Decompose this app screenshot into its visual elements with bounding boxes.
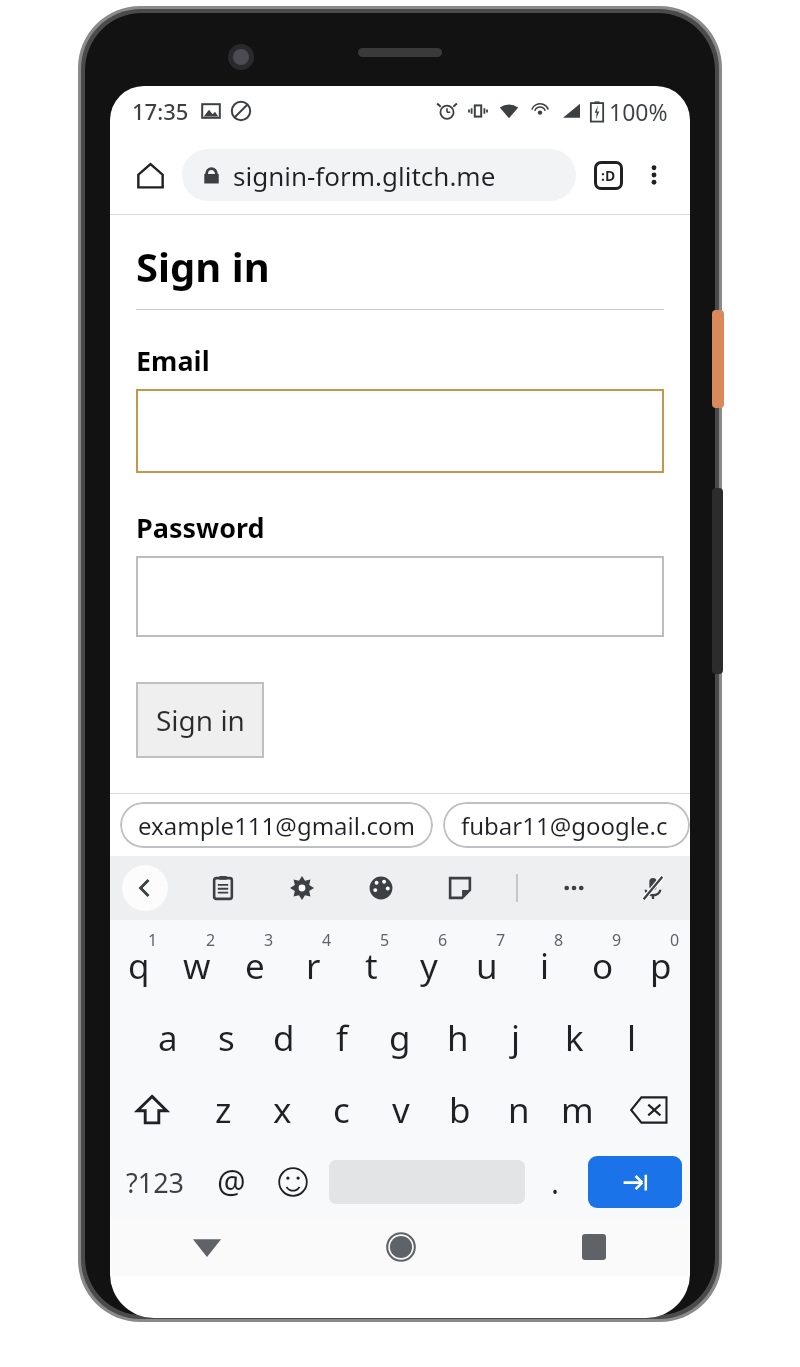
button[interactable]: l	[603, 1002, 661, 1074]
button[interactable]: Voice input	[630, 865, 676, 911]
staticText: f	[336, 1014, 349, 1062]
button[interactable]	[136, 556, 664, 637]
button[interactable]: Sticker	[437, 865, 483, 911]
button[interactable]: 4	[284, 920, 342, 1002]
button[interactable]: 8	[516, 920, 574, 1002]
staticText: d	[273, 1014, 295, 1062]
staticText: z	[215, 1086, 232, 1134]
button[interactable]: 3	[226, 920, 284, 1002]
staticText: 1	[148, 929, 158, 951]
button[interactable]: f	[313, 1002, 371, 1074]
button[interactable]: c	[312, 1074, 371, 1146]
staticText: b	[449, 1086, 471, 1134]
staticText: u	[476, 942, 498, 990]
staticText: Sign in	[156, 701, 245, 739]
staticText: signin-form.glitch.me	[233, 158, 496, 193]
staticText: fubar11@google.com	[461, 809, 672, 842]
button[interactable]: Settings	[279, 865, 325, 911]
button[interactable]: m	[548, 1074, 607, 1146]
staticText: o	[592, 942, 614, 990]
staticText: l	[627, 1014, 637, 1062]
button[interactable]: h	[429, 1002, 487, 1074]
button[interactable]: 7	[458, 920, 516, 1002]
button[interactable]: More options	[632, 153, 676, 197]
button[interactable]: z	[194, 1074, 253, 1146]
button[interactable]: Shift	[110, 1074, 194, 1146]
button[interactable]: Back	[110, 1218, 304, 1276]
button[interactable]: Emoji	[262, 1146, 323, 1218]
staticText: 100%	[609, 96, 668, 127]
staticText: t	[365, 942, 378, 990]
button[interactable]: @	[201, 1146, 262, 1218]
staticText: 0	[670, 929, 680, 951]
button[interactable]: s	[197, 1002, 255, 1074]
staticText: ?123	[126, 1164, 185, 1201]
staticText: q	[128, 942, 150, 990]
button[interactable]: 9	[574, 920, 632, 1002]
button[interactable]: 0	[632, 920, 690, 1002]
button[interactable]: g	[371, 1002, 429, 1074]
staticText: 4	[322, 929, 332, 951]
staticText: 6	[438, 929, 448, 951]
staticText: s	[218, 1014, 235, 1062]
staticText: v	[392, 1086, 410, 1134]
staticText: a	[158, 1014, 178, 1062]
button[interactable]: Recent apps	[497, 1218, 690, 1276]
button[interactable]: 5	[342, 920, 400, 1002]
staticText: e	[245, 942, 265, 990]
staticText: @	[217, 1160, 246, 1204]
button[interactable]: Theme	[358, 865, 404, 911]
button[interactable]: k	[545, 1002, 603, 1074]
staticText: 5	[380, 929, 390, 951]
button[interactable]: ?123	[110, 1146, 201, 1218]
button[interactable]: Enter	[588, 1156, 682, 1208]
button[interactable]: Home	[304, 1218, 497, 1276]
staticText: n	[508, 1086, 530, 1134]
button[interactable]: example111@gmail.com	[120, 802, 433, 848]
staticText: j	[511, 1014, 521, 1062]
button[interactable]: fubar11@google.com	[443, 802, 690, 848]
staticText: 2	[206, 929, 216, 951]
staticText: Sign in	[136, 239, 270, 293]
staticText: .	[551, 1162, 560, 1203]
staticText: m	[561, 1086, 594, 1134]
button[interactable]: b	[430, 1074, 489, 1146]
staticText: :D	[601, 166, 616, 185]
button[interactable]: Clipboard	[200, 865, 246, 911]
staticText: 3	[264, 929, 274, 951]
staticText: c	[333, 1086, 350, 1134]
button[interactable]: v	[371, 1074, 430, 1146]
staticText: r	[306, 942, 321, 990]
button[interactable]: Home	[124, 149, 176, 201]
button[interactable]: n	[489, 1074, 548, 1146]
button[interactable]: Sign in	[136, 682, 264, 758]
staticText: g	[389, 1014, 411, 1062]
button[interactable]: d	[255, 1002, 313, 1074]
button[interactable]: 6	[400, 920, 458, 1002]
button[interactable]: 1	[110, 920, 168, 1002]
staticText: x	[273, 1086, 292, 1134]
button[interactable]	[136, 389, 664, 473]
staticText: y	[420, 942, 438, 990]
staticText: w	[183, 942, 211, 990]
staticText: p	[650, 942, 672, 990]
staticText: 9	[612, 929, 622, 951]
button[interactable]: x	[253, 1074, 312, 1146]
button[interactable]: More	[551, 865, 597, 911]
button[interactable]: Backspace	[607, 1074, 690, 1146]
button[interactable]: j	[487, 1002, 545, 1074]
button[interactable]: 2	[168, 920, 226, 1002]
staticText: example111@gmail.com	[138, 809, 415, 842]
staticText: i	[540, 942, 550, 990]
staticText: Email	[136, 342, 210, 379]
staticText: 17:35	[132, 96, 189, 126]
button[interactable]: Back	[122, 865, 168, 911]
staticText: Password	[136, 509, 265, 546]
button[interactable]: signin-form.glitch.me	[182, 149, 576, 201]
button[interactable]: Emoji	[584, 151, 632, 199]
staticText: 8	[554, 929, 564, 951]
button[interactable]: .	[531, 1146, 580, 1218]
staticText: h	[447, 1014, 469, 1062]
button[interactable]: a	[139, 1002, 197, 1074]
